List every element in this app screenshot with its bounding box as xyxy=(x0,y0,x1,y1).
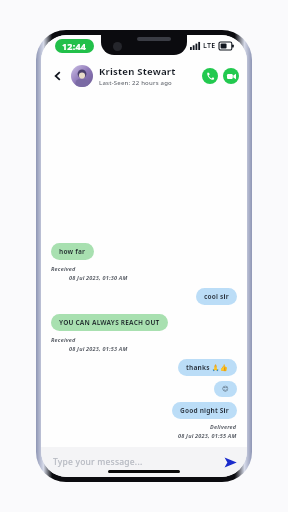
button[interactable]: Profile photo xyxy=(71,65,93,87)
staticText: Received xyxy=(51,265,76,272)
staticText: Last-Seen: 22 hours ago xyxy=(99,79,172,87)
button[interactable]: Voice call xyxy=(202,68,218,84)
button[interactable]: YOU CAN ALWAYS REACH OUT xyxy=(51,314,168,331)
staticText: Delivered xyxy=(210,423,237,430)
staticText: 08 Jul 2023, 01:55 AM xyxy=(178,432,237,439)
staticText: Type your message... xyxy=(53,456,143,468)
staticText: 08 Jul 2023, 01:30 AM xyxy=(69,274,128,281)
staticText: YOU CAN ALWAYS REACH OUT xyxy=(59,318,160,327)
button[interactable]: cool sir xyxy=(196,288,237,305)
staticText: 😊 xyxy=(222,385,229,393)
button[interactable]: Type your message... xyxy=(41,447,217,477)
staticText: Received xyxy=(51,336,76,343)
staticText: Kristen Stewart xyxy=(99,65,176,78)
staticText: how far xyxy=(59,247,86,256)
button[interactable]: Kristen Stewart xyxy=(99,65,202,87)
staticText: Good night Sir xyxy=(180,406,229,415)
staticText: LTE xyxy=(203,41,216,51)
button[interactable]: how far xyxy=(51,243,94,260)
staticText: 12:44 xyxy=(62,40,87,52)
staticText: 08 Jul 2023, 01:53 AM xyxy=(69,345,128,352)
staticText: thanks 🙏👍 xyxy=(186,363,229,372)
button[interactable]: thanks 🙏👍 xyxy=(178,359,237,376)
button[interactable]: Send xyxy=(221,453,239,471)
button[interactable]: 😊 xyxy=(214,381,237,397)
staticText: cool sir xyxy=(204,292,229,301)
button[interactable]: Back xyxy=(49,67,67,85)
button[interactable]: Good night Sir xyxy=(172,402,237,419)
button[interactable]: Video call xyxy=(223,68,239,84)
